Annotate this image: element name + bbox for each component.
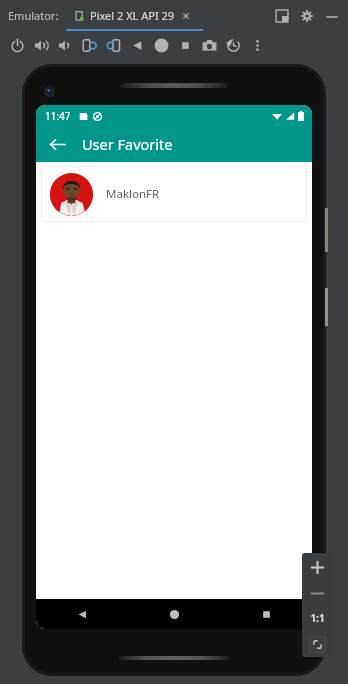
button[interactable]: Back (36, 599, 128, 629)
button[interactable]: Volume up (29, 33, 53, 57)
button[interactable]: Power (5, 33, 29, 57)
button[interactable]: Home (149, 33, 173, 57)
button[interactable]: Actual size (302, 605, 332, 631)
button[interactable]: Rotate left (77, 33, 101, 57)
button[interactable]: Overview (220, 599, 312, 629)
button[interactable]: Volume down (53, 33, 77, 57)
button[interactable]: History (221, 33, 245, 57)
staticText: MaklonFR (106, 186, 160, 202)
button[interactable]: Close tab (180, 10, 192, 22)
staticText: Emulator: (8, 8, 59, 23)
button[interactable]: Fit to window (302, 631, 332, 657)
staticText: 11:47 (45, 109, 71, 123)
button[interactable]: Pixel 2 XL API 29 (74, 8, 192, 23)
button[interactable]: MaklonFR (41, 166, 307, 222)
button[interactable]: Overview (173, 33, 197, 57)
staticText: User Favorite (82, 134, 173, 154)
staticText: Pixel 2 XL API 29 (90, 8, 175, 23)
button[interactable]: Navigate up (41, 128, 73, 160)
button[interactable]: Zoom in (302, 553, 332, 581)
staticText: 1:1 (310, 611, 325, 625)
button[interactable]: Screenshot (197, 33, 221, 57)
button[interactable]: Home (128, 599, 220, 629)
button[interactable]: Rotate right (101, 33, 125, 57)
button[interactable]: Back (125, 33, 149, 57)
button[interactable]: Zoom out (302, 581, 332, 605)
button[interactable]: More (245, 33, 269, 57)
button[interactable]: Split window (272, 6, 292, 26)
button[interactable]: Settings (297, 6, 317, 26)
button[interactable]: Minimize (322, 6, 342, 26)
